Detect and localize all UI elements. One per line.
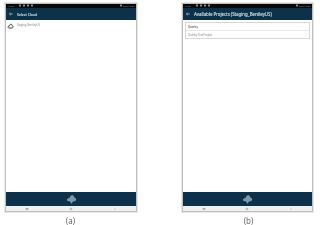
staticText: 76% 12:04 (123, 4, 135, 7)
button[interactable]: Recents (182, 206, 225, 212)
staticText: Quinley Test Project (188, 33, 213, 37)
button[interactable]: Back (182, 8, 194, 20)
button[interactable]: Staging_BentleyUS (5, 20, 137, 30)
button[interactable]: Quinley (185, 22, 310, 39)
button[interactable]: Back (269, 206, 313, 212)
button[interactable]: Home (49, 206, 93, 212)
staticText: (a) (4, 215, 137, 225)
button[interactable]: Back (5, 8, 17, 20)
button[interactable]: Upload to cloud (182, 192, 313, 206)
staticText: 76% 12:04 (299, 4, 311, 7)
button[interactable]: Upload to cloud (5, 192, 137, 206)
staticText: 17:07 (185, 4, 192, 7)
staticText: 17:07 (8, 4, 15, 7)
staticText: Quinley (188, 25, 198, 29)
staticText: Select Cloud (17, 12, 38, 17)
staticText: (b) (182, 215, 315, 225)
staticText: Available Projects (Staging_BentleyUS) (194, 11, 272, 17)
button[interactable]: Recents (5, 206, 49, 212)
button[interactable]: Home (225, 206, 269, 212)
button[interactable]: Back (93, 206, 137, 212)
staticText: Staging_BentleyUS (17, 23, 40, 27)
